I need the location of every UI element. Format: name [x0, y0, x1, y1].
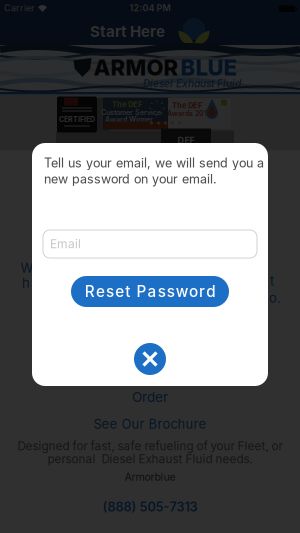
staticText: Start Here: [90, 22, 165, 40]
button[interactable]: Email: [43, 230, 257, 258]
staticText: Designed for fast, safe refueling of you…: [17, 439, 282, 453]
staticText: DEF: [177, 135, 194, 146]
staticText: Email: [50, 237, 81, 251]
staticText: Diesel Exhaust Fluid: [143, 77, 241, 90]
staticText: Order: [132, 389, 168, 405]
staticText: The DEF: [112, 100, 142, 109]
staticText: personal Diesel Exhaust Fluid needs.: [47, 452, 252, 466]
staticText: W: [20, 260, 33, 276]
button[interactable]: See Our Brochure: [93, 416, 206, 432]
staticText: (888) 505-7313: [102, 499, 197, 515]
button[interactable]: [134, 343, 166, 375]
button[interactable]: (888) 505-7313: [102, 499, 197, 515]
staticText: See Our Brochure: [93, 416, 206, 432]
staticText: Award Winner: [105, 115, 153, 124]
staticText: h: [22, 275, 30, 291]
staticText: The DEF: [172, 101, 202, 110]
staticText: o.: [269, 290, 281, 306]
staticText: Awards 2017: [167, 109, 211, 118]
staticText: ARMOR: [93, 54, 178, 81]
staticText: Reset Password: [85, 282, 215, 301]
staticText: BLUE: [180, 54, 236, 81]
staticText: Tell us your email, we will send you a: [44, 155, 264, 170]
staticText: Carrier: [4, 3, 34, 13]
staticText: t: [270, 273, 274, 289]
button[interactable]: Order: [132, 389, 168, 405]
staticText: 12:04 PM: [129, 3, 170, 13]
staticText: Customer Service: [101, 108, 161, 117]
staticText: CERTIFIED: [59, 115, 95, 124]
button[interactable]: Reset Password: [71, 276, 229, 307]
staticText: Armorblue: [124, 471, 175, 483]
staticText: new password on your email.: [44, 171, 217, 187]
